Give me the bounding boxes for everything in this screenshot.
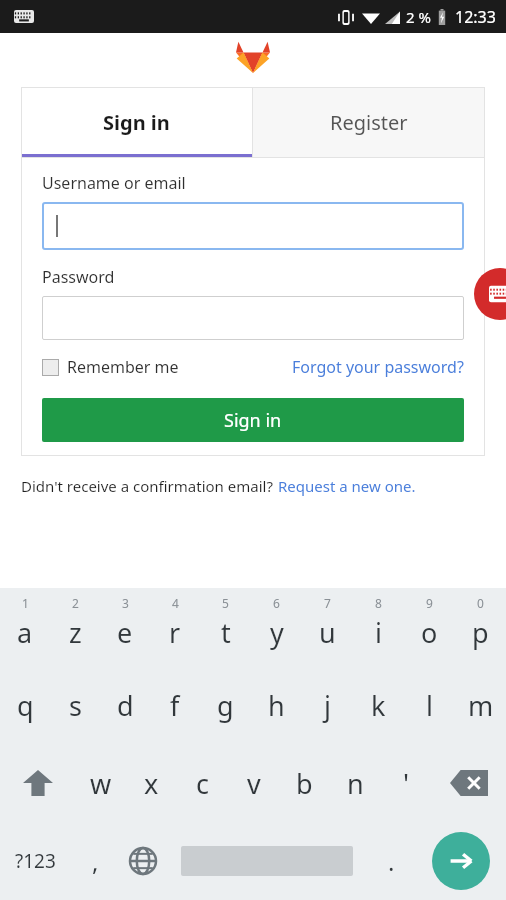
button[interactable]: Shift — [0, 744, 75, 822]
button[interactable]: Forgot your password? — [292, 356, 464, 378]
staticText: l — [426, 687, 433, 724]
button[interactable]: Register — [253, 87, 485, 157]
staticText: 6 — [273, 595, 280, 611]
button[interactable]: v — [228, 744, 279, 822]
button[interactable]: c — [177, 744, 228, 822]
button[interactable]: ?123 — [0, 822, 71, 900]
staticText: c — [196, 765, 209, 802]
staticText: y — [270, 614, 284, 651]
staticText: v — [247, 765, 261, 802]
button[interactable]: s — [50, 666, 100, 744]
staticText: k — [371, 687, 386, 724]
button[interactable]: h — [251, 666, 302, 744]
button[interactable]: Sign in — [21, 87, 252, 157]
button[interactable]: 9 — [404, 588, 455, 666]
button[interactable]: 5 — [200, 588, 251, 666]
staticText: Didn't receive a confirmation email? — [21, 476, 273, 496]
button[interactable]: 3 — [100, 588, 150, 666]
button[interactable]: n — [330, 744, 381, 822]
button[interactable]: 6 — [251, 588, 302, 666]
button[interactable]: g — [200, 666, 251, 744]
staticText: t — [221, 614, 231, 651]
staticText: 0 — [477, 595, 484, 611]
button[interactable]: . — [367, 822, 415, 900]
staticText: u — [319, 614, 336, 651]
staticText: b — [296, 765, 313, 802]
staticText: f — [170, 687, 180, 724]
button[interactable]: f — [150, 666, 200, 744]
staticText: p — [472, 614, 489, 651]
button[interactable]: x — [126, 744, 177, 822]
button[interactable]: Space — [167, 822, 367, 900]
button[interactable]: w — [75, 744, 126, 822]
staticText: o — [421, 614, 438, 651]
button[interactable]: Enter — [415, 822, 506, 900]
staticText: 2 — [72, 595, 79, 611]
staticText: x — [144, 765, 159, 802]
staticText: d — [117, 687, 134, 724]
button[interactable]: Request a new one. — [278, 476, 416, 496]
staticText: . — [388, 845, 395, 878]
staticText: w — [90, 765, 112, 802]
staticText: Remember me — [67, 356, 179, 378]
staticText: s — [69, 687, 82, 724]
button[interactable]: m — [455, 666, 506, 744]
staticText: a — [17, 614, 33, 651]
staticText: 1 — [22, 595, 29, 611]
button[interactable]: 0 — [455, 588, 506, 666]
staticText: r — [169, 614, 181, 651]
button[interactable]: Remember me — [42, 356, 179, 378]
staticText: g — [217, 687, 234, 724]
button[interactable]: l — [404, 666, 455, 744]
button[interactable]: b — [279, 744, 330, 822]
staticText: 5 — [222, 595, 229, 611]
button[interactable]: Sign in — [42, 398, 464, 442]
button[interactable]: , — [71, 822, 119, 900]
staticText: Request a new one. — [278, 476, 416, 496]
staticText: i — [375, 614, 382, 651]
staticText: 7 — [324, 595, 331, 611]
button[interactable]: q — [0, 666, 50, 744]
staticText: ?123 — [15, 848, 56, 874]
button[interactable]: d — [100, 666, 150, 744]
staticText: e — [117, 614, 133, 651]
staticText: n — [347, 765, 364, 802]
button[interactable]: 4 — [150, 588, 200, 666]
button[interactable] — [42, 202, 464, 250]
button[interactable]: 1 — [0, 588, 50, 666]
button[interactable]: 8 — [353, 588, 404, 666]
staticText: Forgot your password? — [292, 356, 464, 378]
staticText: , — [92, 845, 99, 878]
staticText: Password — [42, 266, 115, 288]
staticText: Username or email — [42, 172, 186, 194]
button[interactable]: ' — [381, 744, 432, 822]
button[interactable]: Change language — [119, 822, 167, 900]
staticText: 3 — [122, 595, 129, 611]
button[interactable]: Backspace — [432, 744, 506, 822]
staticText: 12:33 — [455, 6, 496, 28]
staticText: h — [268, 687, 285, 724]
button[interactable]: 7 — [302, 588, 353, 666]
staticText: 9 — [426, 595, 433, 611]
staticText: Register — [330, 109, 408, 136]
staticText: z — [69, 614, 82, 651]
button[interactable] — [42, 296, 464, 340]
button[interactable]: j — [302, 666, 353, 744]
staticText: ' — [403, 765, 410, 802]
button[interactable]: k — [353, 666, 404, 744]
staticText: j — [324, 687, 331, 724]
staticText: Sign in — [103, 109, 170, 136]
staticText: 2 % — [406, 7, 431, 27]
button[interactable]: Change keyboard — [474, 268, 506, 320]
button[interactable]: 2 — [50, 588, 100, 666]
staticText: m — [468, 687, 494, 724]
staticText: Sign in — [224, 408, 282, 433]
staticText: 8 — [375, 595, 382, 611]
staticText: q — [17, 687, 34, 724]
staticText: 4 — [172, 595, 179, 611]
